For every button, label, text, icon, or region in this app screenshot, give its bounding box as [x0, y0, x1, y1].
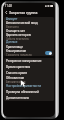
staticText: Автоматический вход	[6, 21, 38, 25]
staticText: Дополнительно	[6, 96, 30, 100]
button[interactable]: Дополнительно	[4, 95, 54, 101]
staticText: Время хранения	[6, 65, 31, 69]
staticText: Обновление	[6, 76, 25, 80]
button[interactable]: Удалить историю	[4, 33, 54, 40]
button[interactable]: Обновление	[4, 76, 54, 83]
staticText: Скачать архив	[6, 71, 27, 75]
staticText: Аккаунт	[6, 17, 18, 21]
button[interactable]: Настройки приватности	[4, 83, 54, 89]
staticText: Удалить историю	[6, 33, 32, 37]
staticText: Автоматически	[6, 80, 26, 83]
button[interactable]: Время хранения	[4, 64, 54, 70]
button[interactable]: Back	[4, 10, 9, 15]
button[interactable]: Toggle	[45, 51, 52, 55]
staticText: Данные	[6, 40, 18, 44]
button[interactable]: Скачать архив	[4, 70, 54, 76]
staticText: 11:28	[5, 4, 12, 8]
button[interactable]: Хранилище	[4, 44, 54, 49]
staticText: Очищать чат	[6, 29, 25, 33]
staticText: Сохранять локально	[6, 53, 32, 56]
staticText: Проверка обновлений	[6, 90, 39, 94]
staticText: Включено	[6, 25, 19, 28]
button[interactable]: Автоматический вход	[4, 21, 54, 28]
button[interactable]: Аккаунт	[4, 17, 54, 21]
staticText: Забыть переписку	[6, 37, 29, 40]
staticText: Резервное копирование	[6, 59, 42, 63]
button[interactable]: Резервное копирование	[4, 58, 54, 64]
button[interactable]: Проверка обновлений	[4, 89, 54, 95]
staticText: Хранилище	[6, 45, 23, 49]
staticText: Кэширование	[6, 49, 27, 53]
button[interactable]: Кэширование	[4, 49, 54, 56]
staticText: Закрытая группа	[9, 10, 38, 15]
button[interactable]: Очищать чат	[4, 28, 54, 33]
staticText: Настройки приватности	[6, 84, 42, 88]
button[interactable]: Данные	[4, 40, 54, 44]
